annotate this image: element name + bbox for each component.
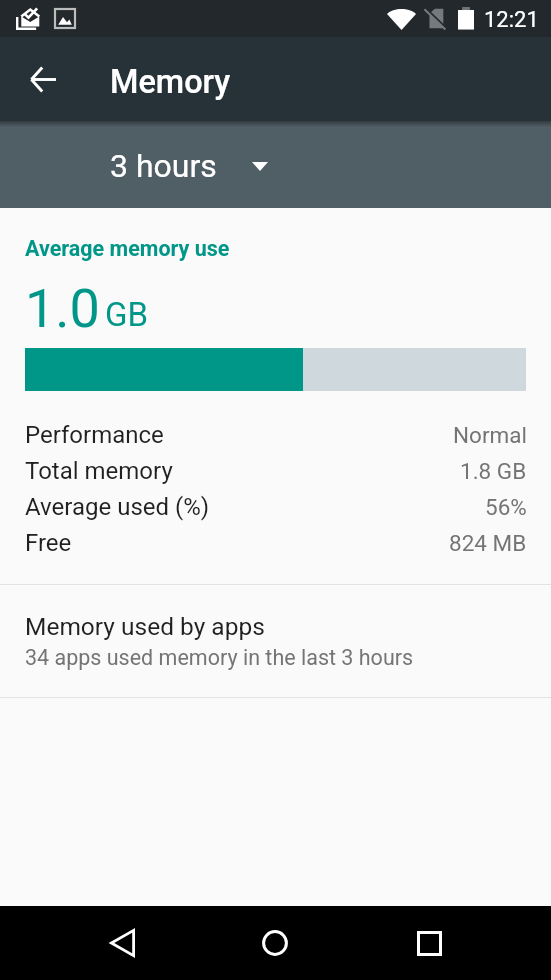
staticText: Average memory use: [25, 236, 230, 261]
staticText: 12:21: [484, 7, 539, 33]
button[interactable]: Recent apps: [405, 919, 453, 967]
staticText: 1.8 GB: [460, 458, 527, 484]
staticText: Memory used by apps: [25, 612, 265, 641]
staticText: Average used (%): [25, 493, 210, 521]
staticText: GB: [105, 295, 149, 334]
button[interactable]: Memory used by apps: [0, 585, 551, 697]
staticText: Memory: [110, 63, 231, 101]
staticText: 56%: [485, 494, 527, 520]
staticText: 34 apps used memory in the last 3 hours: [25, 645, 414, 670]
staticText: 824 MB: [449, 530, 527, 556]
staticText: 1.0: [25, 277, 100, 340]
staticText: Total memory: [25, 457, 173, 485]
button[interactable]: Back: [98, 919, 146, 967]
staticText: 3 hours: [110, 147, 217, 185]
button[interactable]: Navigate up: [19, 55, 67, 103]
staticText: Normal: [453, 422, 527, 448]
staticText: Free: [25, 529, 72, 557]
staticText: Performance: [25, 421, 164, 449]
button[interactable]: Home: [251, 919, 299, 967]
button[interactable]: 3 hours: [100, 135, 268, 197]
